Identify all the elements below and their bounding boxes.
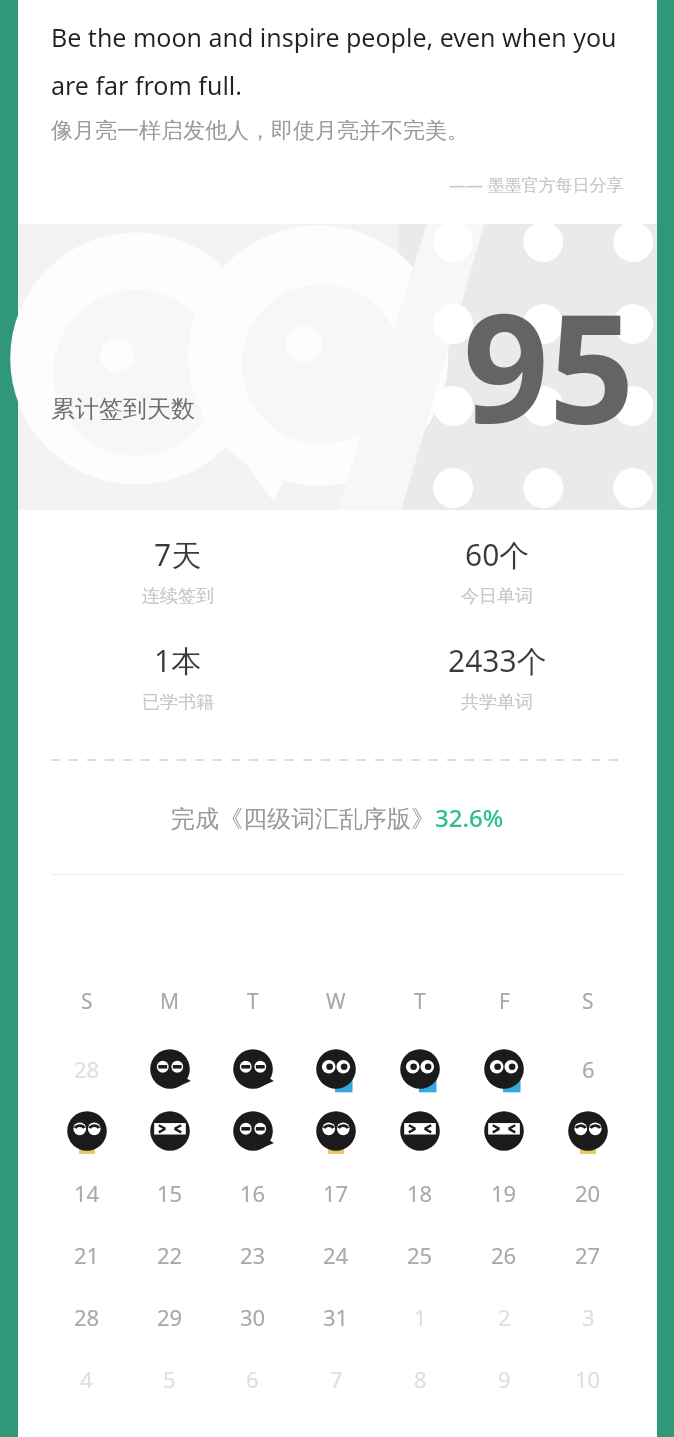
- button[interactable]: Signed in day: [294, 1100, 378, 1162]
- other: Signed in day: [398, 1109, 442, 1153]
- button[interactable]: 4: [45, 1348, 128, 1410]
- staticText: 60个: [465, 534, 530, 575]
- staticText: 18: [407, 1178, 433, 1208]
- staticText: Be the moon and inspire people, even whe…: [51, 20, 624, 103]
- other: Signed in day: [231, 1109, 275, 1153]
- staticText: T: [247, 987, 259, 1016]
- button[interactable]: 7天: [18, 532, 337, 610]
- staticText: 31: [323, 1302, 349, 1332]
- button[interactable]: 24: [294, 1224, 378, 1286]
- button[interactable]: Signed in day: [211, 1100, 294, 1162]
- other: Signed in day: [65, 1109, 109, 1153]
- button[interactable]: Signed in day: [45, 1100, 128, 1162]
- button[interactable]: 21: [45, 1224, 128, 1286]
- other: Signed in day: [398, 1047, 442, 1091]
- button[interactable]: 28: [45, 1286, 128, 1348]
- staticText: 完成《四级词汇乱序版》32.6%: [171, 801, 504, 834]
- button[interactable]: 29: [128, 1286, 211, 1348]
- staticText: 共学单词: [461, 691, 533, 714]
- staticText: 5: [163, 1364, 176, 1394]
- button[interactable]: 6: [546, 1038, 630, 1100]
- button[interactable]: 30: [211, 1286, 294, 1348]
- button[interactable]: 16: [211, 1162, 294, 1224]
- button[interactable]: Signed in day: [462, 1038, 546, 1100]
- staticText: 1本: [154, 640, 202, 681]
- button[interactable]: 5: [128, 1348, 211, 1410]
- staticText: 7: [330, 1364, 343, 1394]
- button[interactable]: Signed in day: [378, 1038, 462, 1100]
- staticText: 连续签到: [142, 585, 214, 608]
- staticText: 10: [575, 1364, 601, 1394]
- button[interactable]: 19: [462, 1162, 546, 1224]
- button[interactable]: 3: [546, 1286, 630, 1348]
- staticText: 已学书籍: [142, 691, 214, 714]
- staticText: 27: [575, 1240, 601, 1270]
- button[interactable]: 7: [294, 1348, 378, 1410]
- staticText: T: [414, 987, 426, 1016]
- staticText: W: [326, 987, 346, 1016]
- staticText: S: [81, 987, 93, 1016]
- button[interactable]: Signed in day: [128, 1100, 211, 1162]
- staticText: 2433个: [448, 640, 547, 681]
- button[interactable]: Signed in day: [546, 1100, 630, 1162]
- staticText: 28: [74, 1054, 100, 1084]
- staticText: 95: [463, 263, 635, 467]
- staticText: 像月亮一样启发他人，即使月亮并不完美。: [51, 117, 469, 145]
- staticText: 14: [74, 1178, 100, 1208]
- button[interactable]: 25: [378, 1224, 462, 1286]
- button[interactable]: 2: [462, 1286, 546, 1348]
- button[interactable]: 31: [294, 1286, 378, 1348]
- button[interactable]: Signed in day: [378, 1100, 462, 1162]
- button[interactable]: 10: [546, 1348, 630, 1410]
- button[interactable]: 6: [211, 1348, 294, 1410]
- button[interactable]: 9: [462, 1348, 546, 1410]
- button[interactable]: 累计签到天数: [18, 224, 657, 510]
- button[interactable]: 26: [462, 1224, 546, 1286]
- other: Signed in day: [482, 1047, 526, 1091]
- button[interactable]: Be the moon and inspire people, even whe…: [18, 0, 657, 224]
- staticText: 4: [80, 1364, 93, 1394]
- button[interactable]: 23: [211, 1224, 294, 1286]
- button[interactable]: 14: [45, 1162, 128, 1224]
- staticText: 累计签到天数: [51, 394, 195, 424]
- button[interactable]: 1本: [18, 638, 337, 716]
- button[interactable]: Signed in day: [128, 1038, 211, 1100]
- staticText: 28: [74, 1302, 100, 1332]
- staticText: 6: [582, 1054, 595, 1084]
- other: Signed in day: [148, 1109, 192, 1153]
- button[interactable]: 22: [128, 1224, 211, 1286]
- button[interactable]: Signed in day: [462, 1100, 546, 1162]
- button[interactable]: Signed in day: [294, 1038, 378, 1100]
- button[interactable]: 27: [546, 1224, 630, 1286]
- staticText: 19: [491, 1178, 517, 1208]
- button[interactable]: 18: [378, 1162, 462, 1224]
- staticText: 8: [414, 1364, 427, 1394]
- button[interactable]: 2433个: [337, 638, 657, 716]
- staticText: —— 墨墨官方每日分享: [449, 173, 624, 196]
- other: Signed in day: [314, 1109, 358, 1153]
- other: Signed in day: [148, 1047, 192, 1091]
- button[interactable]: 60个: [337, 532, 657, 610]
- other: Signed in day: [482, 1109, 526, 1153]
- button[interactable]: 15: [128, 1162, 211, 1224]
- button[interactable]: 17: [294, 1162, 378, 1224]
- staticText: 20: [575, 1178, 601, 1208]
- staticText: 6: [246, 1364, 259, 1394]
- staticText: 1: [414, 1302, 427, 1332]
- staticText: 26: [491, 1240, 517, 1270]
- staticText: 9: [498, 1364, 511, 1394]
- staticText: 23: [240, 1240, 266, 1270]
- button[interactable]: 8: [378, 1348, 462, 1410]
- staticText: 17: [323, 1178, 349, 1208]
- button[interactable]: 完成《四级词汇乱序版》32.6%: [18, 797, 657, 838]
- staticText: 今日单词: [461, 585, 533, 608]
- staticText: 22: [157, 1240, 183, 1270]
- button[interactable]: 28: [45, 1038, 128, 1100]
- staticText: 2: [498, 1302, 511, 1332]
- button[interactable]: 20: [546, 1162, 630, 1224]
- other: Signed in day: [231, 1047, 275, 1091]
- button[interactable]: Signed in day: [211, 1038, 294, 1100]
- other: Signed in day: [566, 1109, 610, 1153]
- other: Signed in day: [314, 1047, 358, 1091]
